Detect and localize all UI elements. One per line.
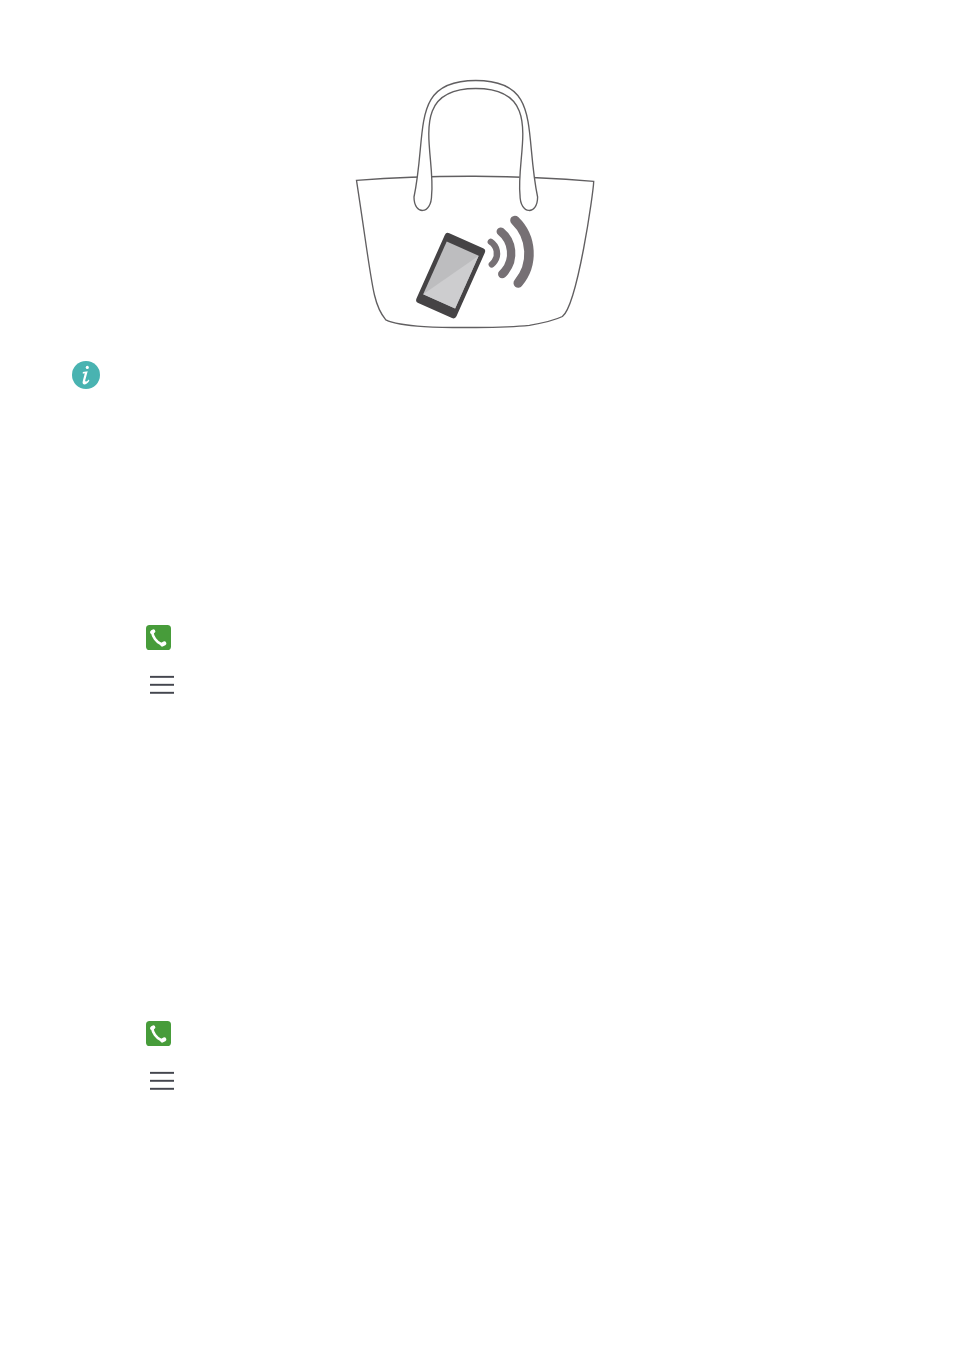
button[interactable]: Menu xyxy=(150,1070,174,1091)
button[interactable]: Phone app xyxy=(146,1021,171,1046)
button[interactable]: Information xyxy=(72,361,100,389)
button[interactable]: Phone app xyxy=(146,625,171,650)
button[interactable]: Menu xyxy=(150,674,174,695)
